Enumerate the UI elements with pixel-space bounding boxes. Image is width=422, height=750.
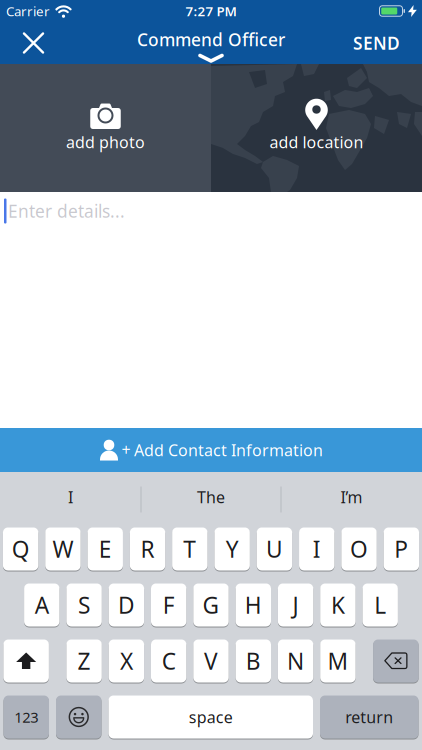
staticText: add location [269,131,363,153]
button[interactable]: B [236,639,271,683]
staticText: E [99,534,112,564]
button[interactable]: SEND [353,21,422,64]
button[interactable]: T [172,527,208,571]
staticText: X [120,646,133,676]
button[interactable]: L [362,583,398,627]
staticText: S [78,590,90,620]
button[interactable]: Close [0,23,43,62]
staticText: V [204,646,218,676]
staticText: A [35,590,49,620]
staticText: I [68,486,73,508]
button[interactable]: F [151,583,186,627]
button[interactable]: return [320,695,418,739]
staticText: W [52,534,73,564]
staticText: D [118,590,135,620]
staticText: K [331,590,345,620]
staticText: U [266,534,283,564]
staticText: G [202,590,219,620]
staticText: T [183,534,196,564]
staticText: M [327,646,348,676]
staticText: Y [226,534,239,564]
button[interactable]: The [141,472,280,527]
staticText: SEND [353,31,400,54]
button[interactable]: + [0,428,422,472]
staticText: add photo [66,131,145,153]
button[interactable]: Y [214,527,250,571]
staticText: Commend Officer [137,28,285,51]
button[interactable]: Emoji [56,695,101,739]
button[interactable]: Enter details [0,192,422,428]
staticText: P [394,534,408,564]
button[interactable]: W [45,527,81,571]
button[interactable]: add location [211,64,422,192]
staticText: L [374,590,386,620]
button[interactable]: K [320,583,356,627]
button[interactable]: 123 [3,695,49,739]
staticText: 7:27 PM [185,2,236,20]
button[interactable]: Shift [3,639,49,683]
staticText: Carrier [6,2,50,20]
staticText: Q [12,534,30,564]
button[interactable]: G [193,583,229,627]
button[interactable]: N [278,639,313,683]
staticText: + [121,439,130,460]
button[interactable]: X [109,639,144,683]
staticText: space [189,706,233,728]
button[interactable]: C [151,639,186,683]
button[interactable]: S [66,583,102,627]
staticText: 123 [14,707,38,727]
staticText: O [350,534,368,564]
staticText: F [163,590,175,620]
button[interactable]: V [193,639,229,683]
staticText: N [287,646,304,676]
button[interactable]: I’m [281,472,421,527]
button[interactable]: I [299,527,334,571]
button[interactable]: O [341,527,377,571]
button[interactable]: Delete [373,639,419,683]
staticText: Enter details... [8,199,125,222]
button[interactable]: M [320,639,356,683]
staticText: I [313,534,321,564]
button[interactable]: Q [3,527,38,571]
staticText: C [162,646,176,676]
button[interactable]: I [0,472,140,527]
button[interactable]: A [24,583,59,627]
staticText: Add Contact Information [134,439,323,461]
button[interactable]: R [130,527,165,571]
staticText: B [246,646,261,676]
button[interactable]: J [278,583,313,627]
staticText: The [197,486,225,508]
button[interactable]: add photo [0,64,211,192]
button[interactable]: H [236,583,271,627]
staticText: I’m [340,486,362,508]
staticText: Z [78,646,91,676]
button[interactable]: P [384,527,419,571]
staticText: J [293,590,299,620]
button[interactable]: space [108,695,313,739]
button[interactable]: Z [66,639,102,683]
button[interactable]: D [109,583,144,627]
button[interactable]: U [257,527,292,571]
button[interactable]: E [88,527,123,571]
staticText: return [345,706,393,728]
staticText: R [141,534,155,564]
staticText: H [245,590,262,620]
